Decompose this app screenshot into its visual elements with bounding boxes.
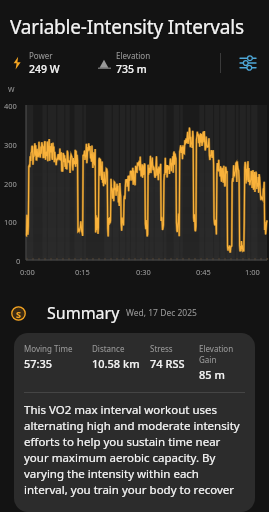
staticText: 400: [4, 101, 17, 111]
staticText: 1:00: [245, 267, 260, 277]
staticText: This VO2 max interval workout uses alter…: [24, 402, 245, 502]
staticText: 0: [16, 256, 21, 266]
button[interactable]: S: [11, 302, 269, 324]
staticText: Distance: [92, 343, 125, 354]
staticText: 0:45: [196, 267, 211, 277]
staticText: 200: [4, 179, 17, 189]
button[interactable]: Elevation: [98, 50, 151, 76]
staticText: 735 m: [116, 62, 147, 76]
staticText: Moving Time: [24, 343, 73, 354]
staticText: Stress: [150, 343, 173, 354]
staticText: W: [8, 85, 15, 95]
staticText: Elevation Gain: [199, 343, 245, 365]
staticText: 57:35: [24, 356, 53, 371]
staticText: 0:30: [136, 267, 151, 277]
staticText: S: [16, 308, 21, 320]
staticText: Summary: [47, 302, 120, 324]
staticText: 100: [4, 217, 17, 227]
staticText: Power: [29, 50, 53, 61]
button[interactable]: Chart settings: [235, 50, 261, 76]
staticText: Wed, 17 Dec 2025: [126, 307, 197, 319]
staticText: Elevation: [116, 50, 151, 61]
staticText: 85 m: [199, 367, 225, 382]
staticText: 74 RSS: [150, 356, 185, 371]
staticText: Variable-Intensity Intervals: [10, 14, 244, 40]
staticText: 10.58 km: [92, 356, 140, 371]
staticText: 249 W: [29, 62, 60, 76]
staticText: 300: [4, 140, 17, 150]
button[interactable]: Moving Time: [14, 333, 255, 512]
staticText: 0:00: [20, 267, 35, 277]
button[interactable]: Power: [10, 50, 98, 76]
staticText: 0:15: [75, 267, 90, 277]
